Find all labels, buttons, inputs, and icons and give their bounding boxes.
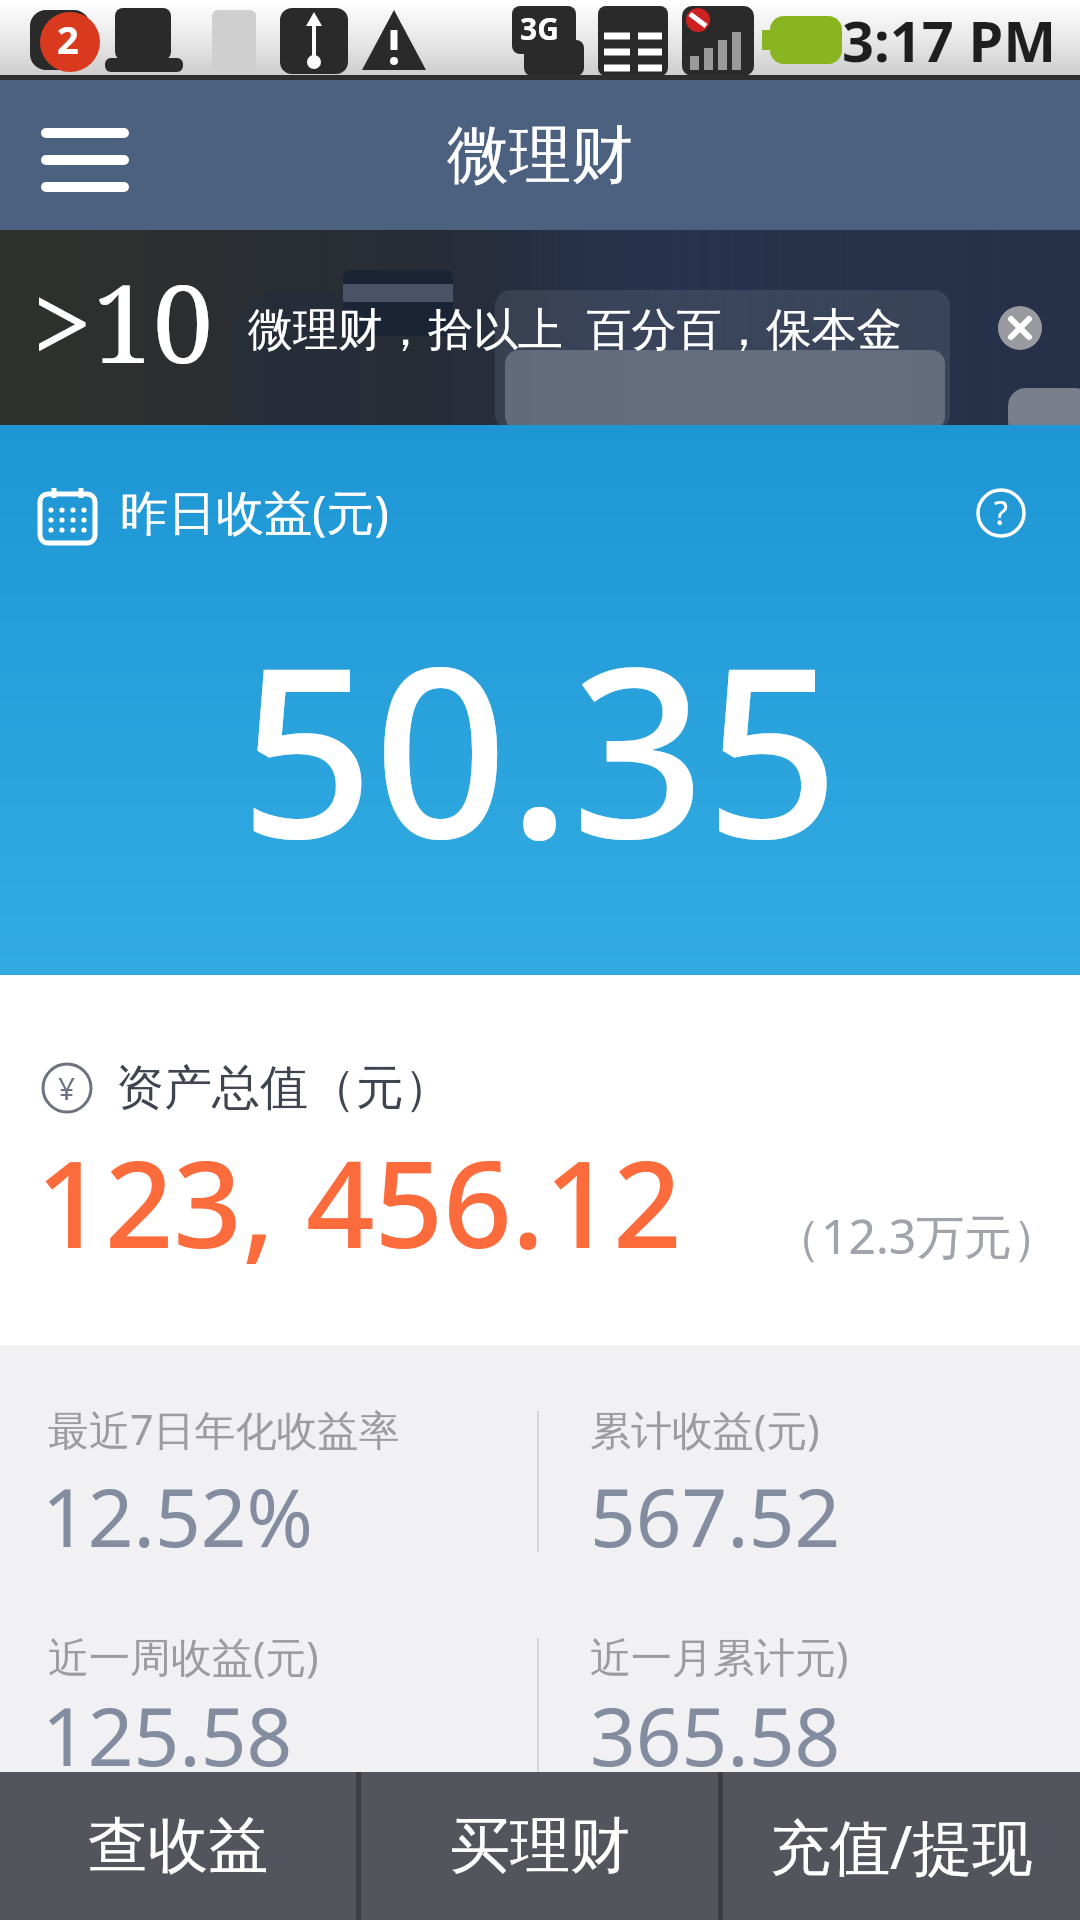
staticText: 买理财: [450, 1808, 630, 1884]
staticText: 微理财: [447, 116, 633, 194]
button[interactable]: >10: [0, 230, 1080, 425]
button[interactable]: 567.52: [590, 1461, 841, 1570]
staticText: 查收益: [88, 1808, 268, 1884]
button[interactable]: 最近7日年化收益率: [48, 1401, 400, 1457]
button[interactable]: ?: [977, 489, 1025, 537]
staticText: 123, 456.12: [36, 1120, 682, 1283]
staticText: ¥: [58, 1068, 76, 1109]
button[interactable]: 累计收益(元): [590, 1401, 820, 1457]
staticText: （12.3万元）: [773, 1203, 1061, 1269]
button[interactable]: 充值/提现: [723, 1772, 1080, 1920]
button[interactable]: 365.58: [590, 1680, 841, 1772]
button[interactable]: 近一月累计元): [590, 1628, 849, 1684]
button[interactable]: [998, 306, 1042, 350]
staticText: 2: [57, 13, 79, 65]
button[interactable]: 查收益: [0, 1772, 356, 1920]
button[interactable]: [30, 105, 130, 205]
staticText: ?: [994, 491, 1008, 535]
button[interactable]: 近一周收益(元): [48, 1628, 319, 1684]
staticText: 3:17 PM: [842, 2, 1056, 78]
staticText: 昨日收益(元): [120, 479, 389, 545]
staticText: 微理财，拾以上 百分百，保本金: [248, 297, 902, 358]
staticText: >10: [32, 248, 214, 395]
staticText: 资产总值（元）: [116, 1058, 452, 1118]
staticText: 50.35: [240, 588, 840, 907]
staticText: 3G: [520, 8, 559, 49]
button[interactable]: 买理财: [361, 1772, 718, 1920]
button[interactable]: 125.58: [42, 1680, 293, 1772]
staticText: 充值/提现: [770, 1805, 1033, 1887]
button[interactable]: 12.52%: [42, 1461, 313, 1570]
